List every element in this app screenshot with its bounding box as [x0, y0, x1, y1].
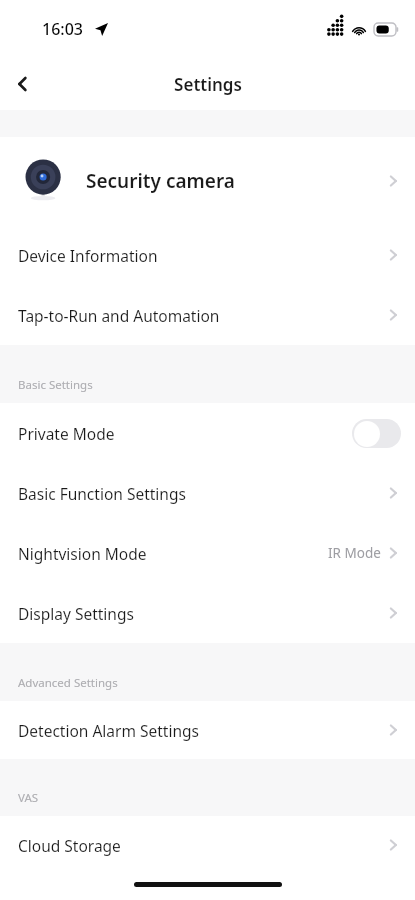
staticText: Detection Alarm Settings — [18, 720, 199, 741]
staticText: VAS — [18, 790, 39, 806]
button[interactable]: Private Mode — [0, 403, 415, 463]
staticText: Device Information — [18, 245, 158, 266]
staticText: Settings — [174, 73, 242, 96]
button[interactable]: Security camera — [0, 137, 415, 225]
staticText: Cloud Storage — [18, 835, 121, 856]
staticText: IR Mode — [328, 544, 381, 562]
button[interactable]: Basic Function Settings — [0, 463, 415, 523]
button[interactable]: Nightvision Mode — [0, 523, 415, 583]
button[interactable]: Device Information — [0, 225, 415, 285]
button[interactable]: Detection Alarm Settings — [0, 701, 415, 759]
button[interactable]: Tap-to-Run and Automation — [0, 285, 415, 345]
button[interactable]: Back — [0, 61, 46, 107]
staticText: Tap-to-Run and Automation — [18, 305, 220, 326]
button[interactable] — [352, 419, 401, 448]
staticText: Nightvision Mode — [18, 543, 147, 564]
staticText: Basic Function Settings — [18, 483, 186, 504]
staticText: Private Mode — [18, 423, 115, 444]
staticText: Advanced Settings — [18, 675, 118, 691]
staticText: Security camera — [86, 168, 235, 194]
button[interactable]: Display Settings — [0, 583, 415, 643]
staticText: Basic Settings — [18, 377, 93, 393]
button[interactable]: Cloud Storage — [0, 816, 415, 874]
staticText: Display Settings — [18, 603, 134, 624]
staticText: 16:03 — [42, 18, 83, 40]
